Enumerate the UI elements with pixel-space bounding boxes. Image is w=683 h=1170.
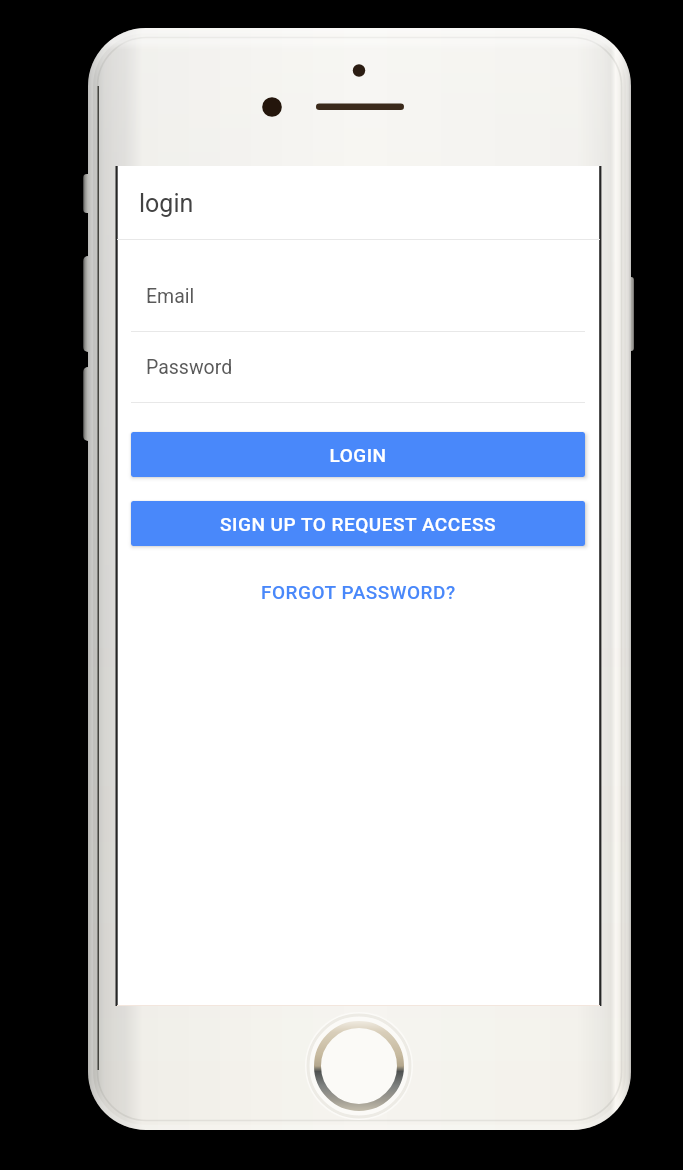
staticText: LOGIN bbox=[329, 444, 387, 466]
button[interactable]: Password bbox=[117, 332, 600, 402]
button[interactable]: SIGN UP TO REQUEST ACCESS bbox=[131, 501, 585, 546]
button[interactable]: LOGIN bbox=[131, 432, 585, 477]
staticText: Password bbox=[146, 356, 233, 379]
button[interactable]: Forgot password? bbox=[117, 572, 600, 612]
staticText: login bbox=[139, 189, 194, 218]
staticText: SIGN UP TO REQUEST ACCESS bbox=[220, 513, 496, 535]
button[interactable]: Email bbox=[117, 261, 600, 331]
staticText: FORGOT PASSWORD? bbox=[261, 581, 456, 603]
staticText: Email bbox=[146, 285, 195, 308]
